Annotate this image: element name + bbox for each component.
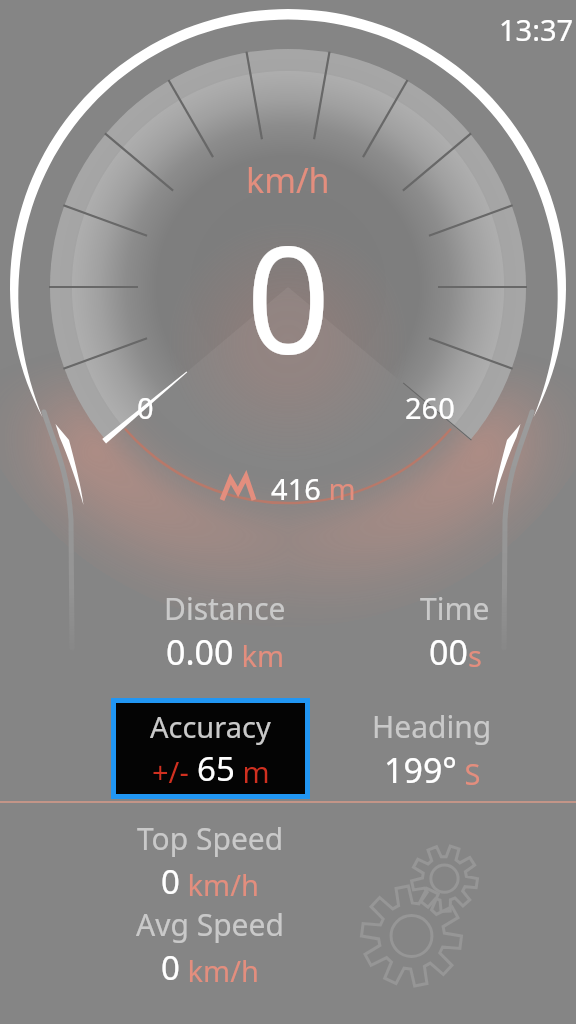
staticText: 0: [137, 388, 154, 427]
staticText: 13:37: [499, 10, 574, 49]
staticText: Heading: [372, 706, 492, 747]
button[interactable]: Settings: [350, 838, 500, 978]
button[interactable]: Distance: [105, 588, 345, 675]
staticText: Avg Speed: [136, 904, 284, 945]
staticText: 0: [161, 859, 180, 904]
staticText: km: [234, 636, 285, 675]
staticText: 260: [405, 388, 455, 427]
staticText: 0: [246, 196, 331, 398]
staticText: S: [457, 754, 481, 793]
staticText: 416: [256, 469, 321, 508]
staticText: 0.00: [166, 629, 234, 675]
staticText: Time: [420, 588, 490, 629]
staticText: Distance: [164, 588, 286, 629]
button[interactable]: Accuracy: [116, 703, 305, 794]
staticText: Top Speed: [137, 818, 284, 859]
staticText: m: [235, 752, 270, 791]
staticText: Accuracy: [150, 707, 271, 746]
button[interactable]: Time: [335, 588, 575, 675]
staticText: 0: [161, 945, 180, 990]
staticText: m: [321, 469, 356, 508]
staticText: s: [468, 636, 482, 675]
staticText: 00: [429, 629, 468, 675]
staticText: km/h: [180, 951, 259, 990]
staticText: +/-: [152, 752, 197, 791]
button[interactable]: Heading: [312, 706, 552, 793]
staticText: 65: [197, 746, 235, 791]
staticText: 199°: [384, 747, 457, 793]
staticText: km/h: [246, 157, 330, 203]
staticText: km/h: [180, 865, 259, 904]
